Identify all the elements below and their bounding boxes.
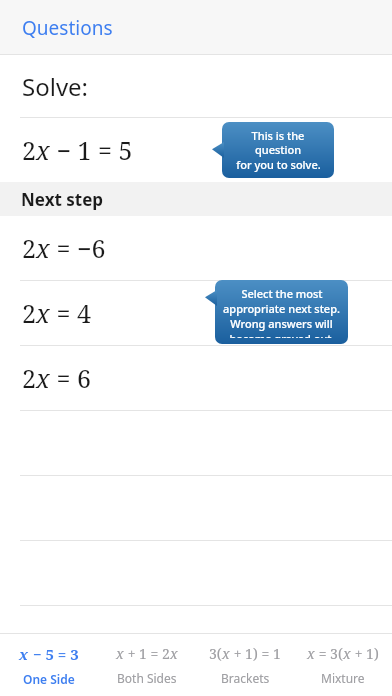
- staticText: for you to solve.: [236, 157, 321, 172]
- button[interactable]: Questions: [0, 11, 121, 45]
- staticText: + 1 = 2: [124, 644, 170, 663]
- staticText: x: [36, 361, 50, 395]
- staticText: x: [116, 644, 124, 663]
- staticText: 2: [22, 361, 36, 395]
- button[interactable]: 2: [0, 118, 392, 182]
- staticText: 2: [22, 133, 36, 167]
- button[interactable]: 2: [0, 216, 392, 280]
- staticText: x: [36, 296, 50, 330]
- button[interactable]: Both Sides: [98, 634, 196, 696]
- staticText: appropriate next step.: [223, 301, 340, 316]
- staticText: Both Sides: [117, 670, 177, 686]
- staticText: 3(: [209, 644, 222, 663]
- staticText: x: [222, 644, 230, 663]
- staticText: = −6: [50, 231, 106, 265]
- button[interactable]: 2: [0, 281, 392, 345]
- staticText: One Side: [23, 671, 75, 687]
- staticText: + 1): [351, 644, 379, 663]
- staticText: x: [36, 133, 50, 167]
- staticText: x: [36, 231, 50, 265]
- button[interactable]: 2: [0, 346, 392, 410]
- staticText: − 5 = 3: [29, 644, 79, 664]
- button[interactable]: Solve:: [0, 55, 392, 117]
- staticText: Brackets: [221, 670, 270, 686]
- button[interactable]: Brackets: [196, 634, 294, 696]
- staticText: Select the most: [241, 286, 323, 301]
- staticText: Next step: [21, 188, 104, 211]
- staticText: Mixture: [321, 670, 365, 686]
- staticText: x: [343, 644, 351, 663]
- staticText: x: [307, 644, 315, 663]
- button[interactable]: One Side: [0, 634, 98, 696]
- staticText: 2: [22, 231, 36, 265]
- staticText: Solve:: [22, 70, 89, 103]
- staticText: This is the question: [230, 128, 326, 157]
- staticText: 2: [22, 296, 36, 330]
- staticText: become grayed out.: [229, 331, 335, 338]
- staticText: = 6: [50, 361, 91, 395]
- staticText: − 1 = 5: [50, 133, 133, 167]
- staticText: = 4: [50, 296, 91, 330]
- staticText: x: [170, 644, 178, 663]
- staticText: Wrong answers will: [230, 316, 333, 331]
- staticText: x: [19, 644, 29, 664]
- button[interactable]: Mixture: [294, 634, 392, 696]
- staticText: = 3(: [315, 644, 343, 663]
- staticText: + 1) = 1: [230, 644, 281, 663]
